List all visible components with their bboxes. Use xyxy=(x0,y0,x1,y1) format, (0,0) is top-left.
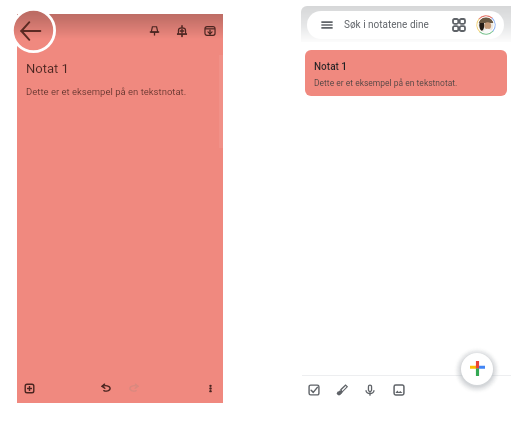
button[interactable]: Back xyxy=(19,20,41,42)
button[interactable]: Menu xyxy=(321,19,333,31)
button[interactable]: Archive xyxy=(197,18,222,43)
button[interactable]: New note xyxy=(461,353,493,385)
button[interactable]: New list xyxy=(302,378,326,402)
button[interactable]: Redo xyxy=(121,375,146,400)
button[interactable]: More options xyxy=(198,376,222,400)
button[interactable]: Notat 1 xyxy=(305,50,507,96)
staticText: Søk i notatene dine xyxy=(344,19,429,31)
staticText: Dette er et eksempel på en tekstnotat. xyxy=(314,78,458,88)
button[interactable]: Account xyxy=(476,15,496,35)
button[interactable]: New image note xyxy=(387,378,411,402)
button[interactable]: Menu xyxy=(307,11,504,39)
staticText: Notat 1 xyxy=(314,61,348,73)
button[interactable]: New drawing xyxy=(330,378,354,402)
button[interactable]: Grid view xyxy=(453,19,465,31)
button[interactable]: Add content xyxy=(17,376,41,400)
button[interactable]: Add reminder xyxy=(169,18,194,43)
button[interactable]: Pin xyxy=(142,18,166,42)
button[interactable]: New voice note xyxy=(358,378,382,402)
staticText: Dette er et eksempel på en tekstnotat. xyxy=(26,86,187,97)
button[interactable]: Undo xyxy=(93,375,118,400)
staticText: Notat 1 xyxy=(26,61,69,76)
